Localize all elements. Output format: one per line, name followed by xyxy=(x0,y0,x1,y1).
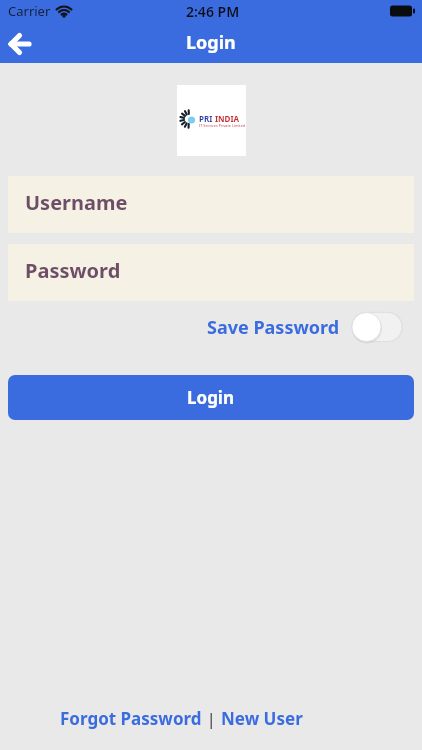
staticText: Carrier xyxy=(8,2,51,20)
staticText: Save Password xyxy=(207,315,340,340)
button[interactable] xyxy=(10,32,30,56)
staticText: IT Services Private Limited xyxy=(199,123,245,128)
staticText: Login xyxy=(186,30,236,55)
button[interactable] xyxy=(351,311,403,343)
staticText: | xyxy=(202,707,221,730)
staticText: INDIA xyxy=(215,113,240,124)
button[interactable]: Forgot Password xyxy=(60,707,202,730)
button[interactable]: Password xyxy=(8,244,414,301)
staticText: 2:46 PM xyxy=(186,2,240,21)
staticText: Login xyxy=(187,386,235,409)
button[interactable]: Username xyxy=(8,176,414,233)
staticText: Password xyxy=(25,257,121,284)
staticText: PRI xyxy=(199,113,215,124)
button[interactable]: New User xyxy=(221,707,303,730)
button[interactable]: Login xyxy=(8,375,414,420)
staticText: Username xyxy=(25,189,128,216)
